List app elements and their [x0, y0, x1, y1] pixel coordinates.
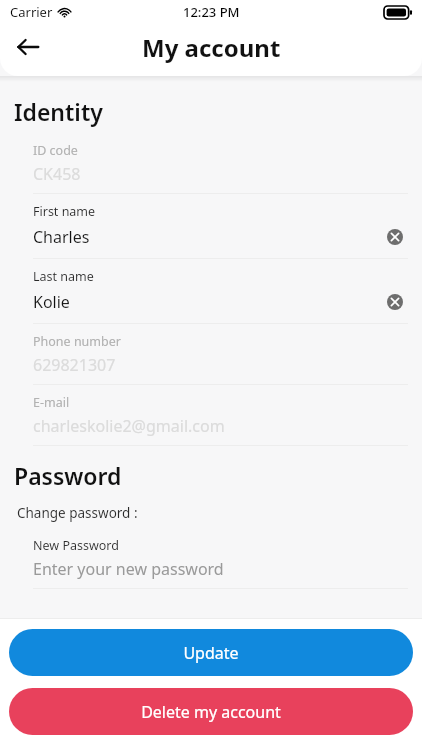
button[interactable]: Back	[8, 27, 48, 67]
staticText: First name	[33, 203, 96, 220]
staticText: Enter your new password	[33, 558, 408, 580]
button[interactable]: Phone number	[0, 324, 422, 385]
button[interactable]: Clear Last name	[382, 289, 408, 315]
staticText: 12:23 PM	[183, 3, 240, 21]
staticText: Carrier	[10, 3, 53, 21]
staticText: Change password :	[17, 504, 138, 522]
staticText: charleskolie2@gmail.com	[33, 415, 408, 437]
button[interactable]: E-mail	[0, 385, 422, 446]
staticText: 629821307	[33, 354, 408, 376]
button[interactable]: New Password	[0, 528, 422, 589]
button[interactable]: Last name	[0, 259, 422, 324]
staticText: My account	[142, 31, 281, 64]
button[interactable]: First name	[0, 194, 422, 259]
staticText: Last name	[33, 268, 94, 285]
staticText: Phone number	[33, 333, 121, 350]
staticText: Update	[183, 642, 239, 664]
staticText: Password	[14, 460, 122, 491]
staticText: Delete my account	[141, 701, 281, 723]
staticText: Identity	[14, 96, 103, 127]
staticText: New Password	[33, 537, 119, 554]
button[interactable]: Update	[9, 629, 413, 676]
staticText: ID code	[33, 142, 78, 159]
button[interactable]: Clear First name	[382, 224, 408, 250]
staticText: CK458	[33, 163, 408, 185]
button[interactable]: Delete my account	[9, 688, 413, 735]
staticText: Kolie	[33, 291, 382, 313]
staticText: Charles	[33, 226, 382, 248]
staticText: E-mail	[33, 394, 70, 411]
button[interactable]: ID code	[0, 133, 422, 194]
